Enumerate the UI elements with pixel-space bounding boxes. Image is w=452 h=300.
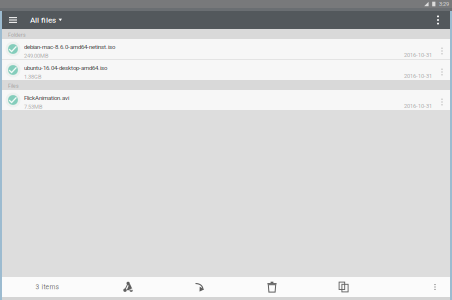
button[interactable]: ubuntu-16.04-desktop-amd64.iso (2, 60, 450, 80)
button[interactable]: Share (92, 277, 164, 297)
staticText: 249.00MB (24, 53, 48, 59)
staticText: 2016-10-31 (404, 73, 432, 79)
staticText: 3:29 (439, 1, 449, 7)
button[interactable]: Open navigation drawer (4, 11, 22, 29)
staticText: Files (8, 83, 19, 89)
button[interactable]: debian-mac-8.6.0-amd64-netinst.iso (2, 39, 450, 59)
staticText: 7.53MB (24, 104, 42, 110)
staticText: All files (30, 15, 56, 25)
staticText: 3 items (35, 283, 58, 291)
button[interactable]: All files (22, 11, 68, 29)
button[interactable]: FlickAnimation.avi (2, 90, 450, 110)
staticText: 1.38GB (24, 74, 41, 80)
button[interactable]: More options (429, 11, 447, 29)
staticText: 2016-10-31 (404, 103, 432, 109)
staticText: 2016-10-31 (404, 52, 432, 58)
button[interactable]: Move (164, 277, 236, 297)
button[interactable]: Copy (308, 277, 380, 297)
button[interactable]: Delete (236, 277, 308, 297)
staticText: Folders (8, 32, 26, 38)
staticText: ubuntu-16.04-desktop-amd64.iso (24, 64, 107, 71)
staticText: FlickAnimation.avi (24, 94, 69, 101)
staticText: debian-mac-8.6.0-amd64-netinst.iso (24, 43, 115, 50)
button[interactable]: More (420, 277, 450, 297)
